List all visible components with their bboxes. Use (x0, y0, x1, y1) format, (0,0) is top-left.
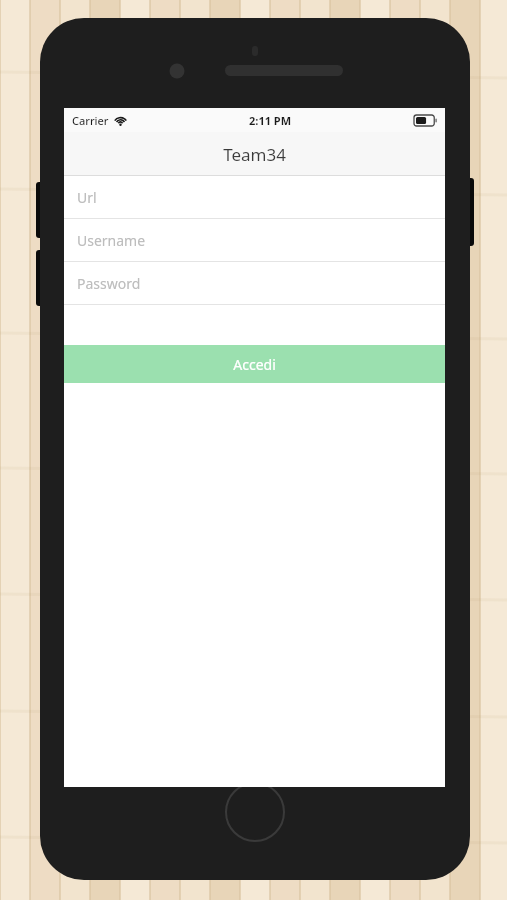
staticText: Carrier (72, 113, 109, 128)
button[interactable]: Password (64, 262, 445, 304)
staticText: Password (77, 274, 141, 293)
staticText: 2:11 PM (249, 113, 292, 128)
button[interactable]: Username (64, 219, 445, 261)
staticText: Team34 (223, 143, 286, 166)
staticText: Accedi (233, 355, 276, 374)
button[interactable]: Url (64, 176, 445, 218)
staticText: Url (77, 188, 97, 207)
button[interactable]: Accedi (64, 345, 445, 383)
staticText: Username (77, 231, 146, 250)
